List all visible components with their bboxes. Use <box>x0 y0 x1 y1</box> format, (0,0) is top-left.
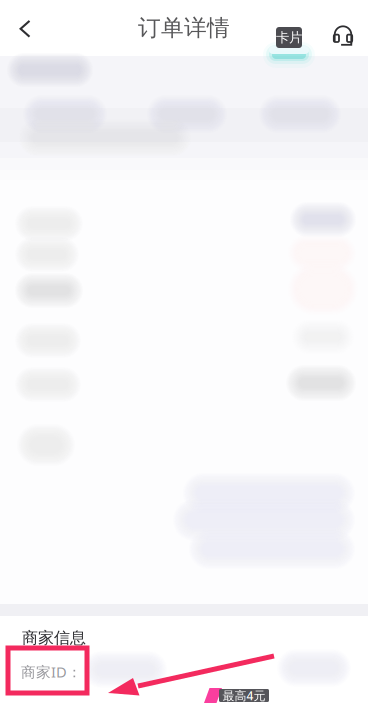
staticText: 订单详情 <box>138 14 230 42</box>
button[interactable]: 卡片 <box>263 27 315 73</box>
button[interactable]: 客服 <box>322 14 364 58</box>
staticText: 商家ID： <box>21 662 82 681</box>
staticText: 卡片 <box>276 29 302 46</box>
staticText: 商家信息 <box>22 628 86 648</box>
button[interactable]: 返回 <box>3 7 47 51</box>
staticText: 最高4元 <box>222 687 265 703</box>
